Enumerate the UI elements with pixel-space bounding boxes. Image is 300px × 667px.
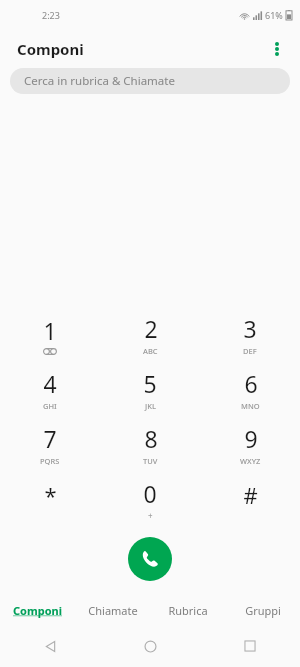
button[interactable]: Call <box>128 537 172 581</box>
staticText: # <box>243 480 258 510</box>
button[interactable]: Back <box>0 625 100 667</box>
staticText: 61% <box>265 9 283 21</box>
button[interactable]: Gruppi <box>225 595 300 625</box>
staticText: 7 <box>43 423 57 454</box>
staticText: 0 <box>143 478 157 509</box>
staticText: * <box>44 480 57 510</box>
staticText: TUV <box>143 456 158 466</box>
button[interactable]: 0 <box>100 472 200 527</box>
button[interactable]: Cerca in rubrica & Chiamate <box>10 68 290 94</box>
button[interactable]: # <box>200 472 300 527</box>
staticText: 6 <box>244 368 258 399</box>
staticText: 4 <box>43 368 57 399</box>
button[interactable]: 8 <box>100 417 200 472</box>
button[interactable]: More options <box>260 32 294 66</box>
staticText: Chiamate <box>88 603 138 618</box>
staticText: 1 <box>43 315 57 346</box>
staticText: 8 <box>144 423 158 454</box>
staticText: 2:23 <box>42 9 60 21</box>
button[interactable]: 6 <box>200 362 300 417</box>
button[interactable]: * <box>0 472 100 527</box>
button[interactable]: 7 <box>0 417 100 472</box>
staticText: 9 <box>244 423 258 454</box>
button[interactable]: 4 <box>0 362 100 417</box>
staticText: MNO <box>241 401 260 411</box>
staticText: 2 <box>144 313 158 344</box>
staticText: ABC <box>143 346 158 356</box>
staticText: 3 <box>243 313 257 344</box>
button[interactable]: Componi <box>0 595 75 625</box>
button[interactable]: 1 <box>0 307 100 362</box>
staticText: + <box>148 510 153 521</box>
staticText: PQRS <box>40 456 60 466</box>
staticText: WXYZ <box>240 456 261 466</box>
button[interactable]: 3 <box>200 307 300 362</box>
staticText: JKL <box>145 401 156 411</box>
button[interactable]: 9 <box>200 417 300 472</box>
staticText: Rubrica <box>168 603 208 618</box>
staticText: Componi <box>13 603 62 618</box>
button[interactable]: Home <box>100 625 200 667</box>
staticText: Componi <box>17 39 84 59</box>
staticText: GHI <box>43 401 57 411</box>
staticText: Cerca in rubrica & Chiamate <box>24 73 175 89</box>
staticText: Gruppi <box>245 603 281 618</box>
button[interactable]: Chiamate <box>75 595 150 625</box>
staticText: DEF <box>243 346 257 356</box>
button[interactable]: Rubrica <box>150 595 225 625</box>
button[interactable]: 5 <box>100 362 200 417</box>
staticText: 5 <box>143 368 157 399</box>
button[interactable]: Recent apps <box>200 625 300 667</box>
button[interactable]: 2 <box>100 307 200 362</box>
